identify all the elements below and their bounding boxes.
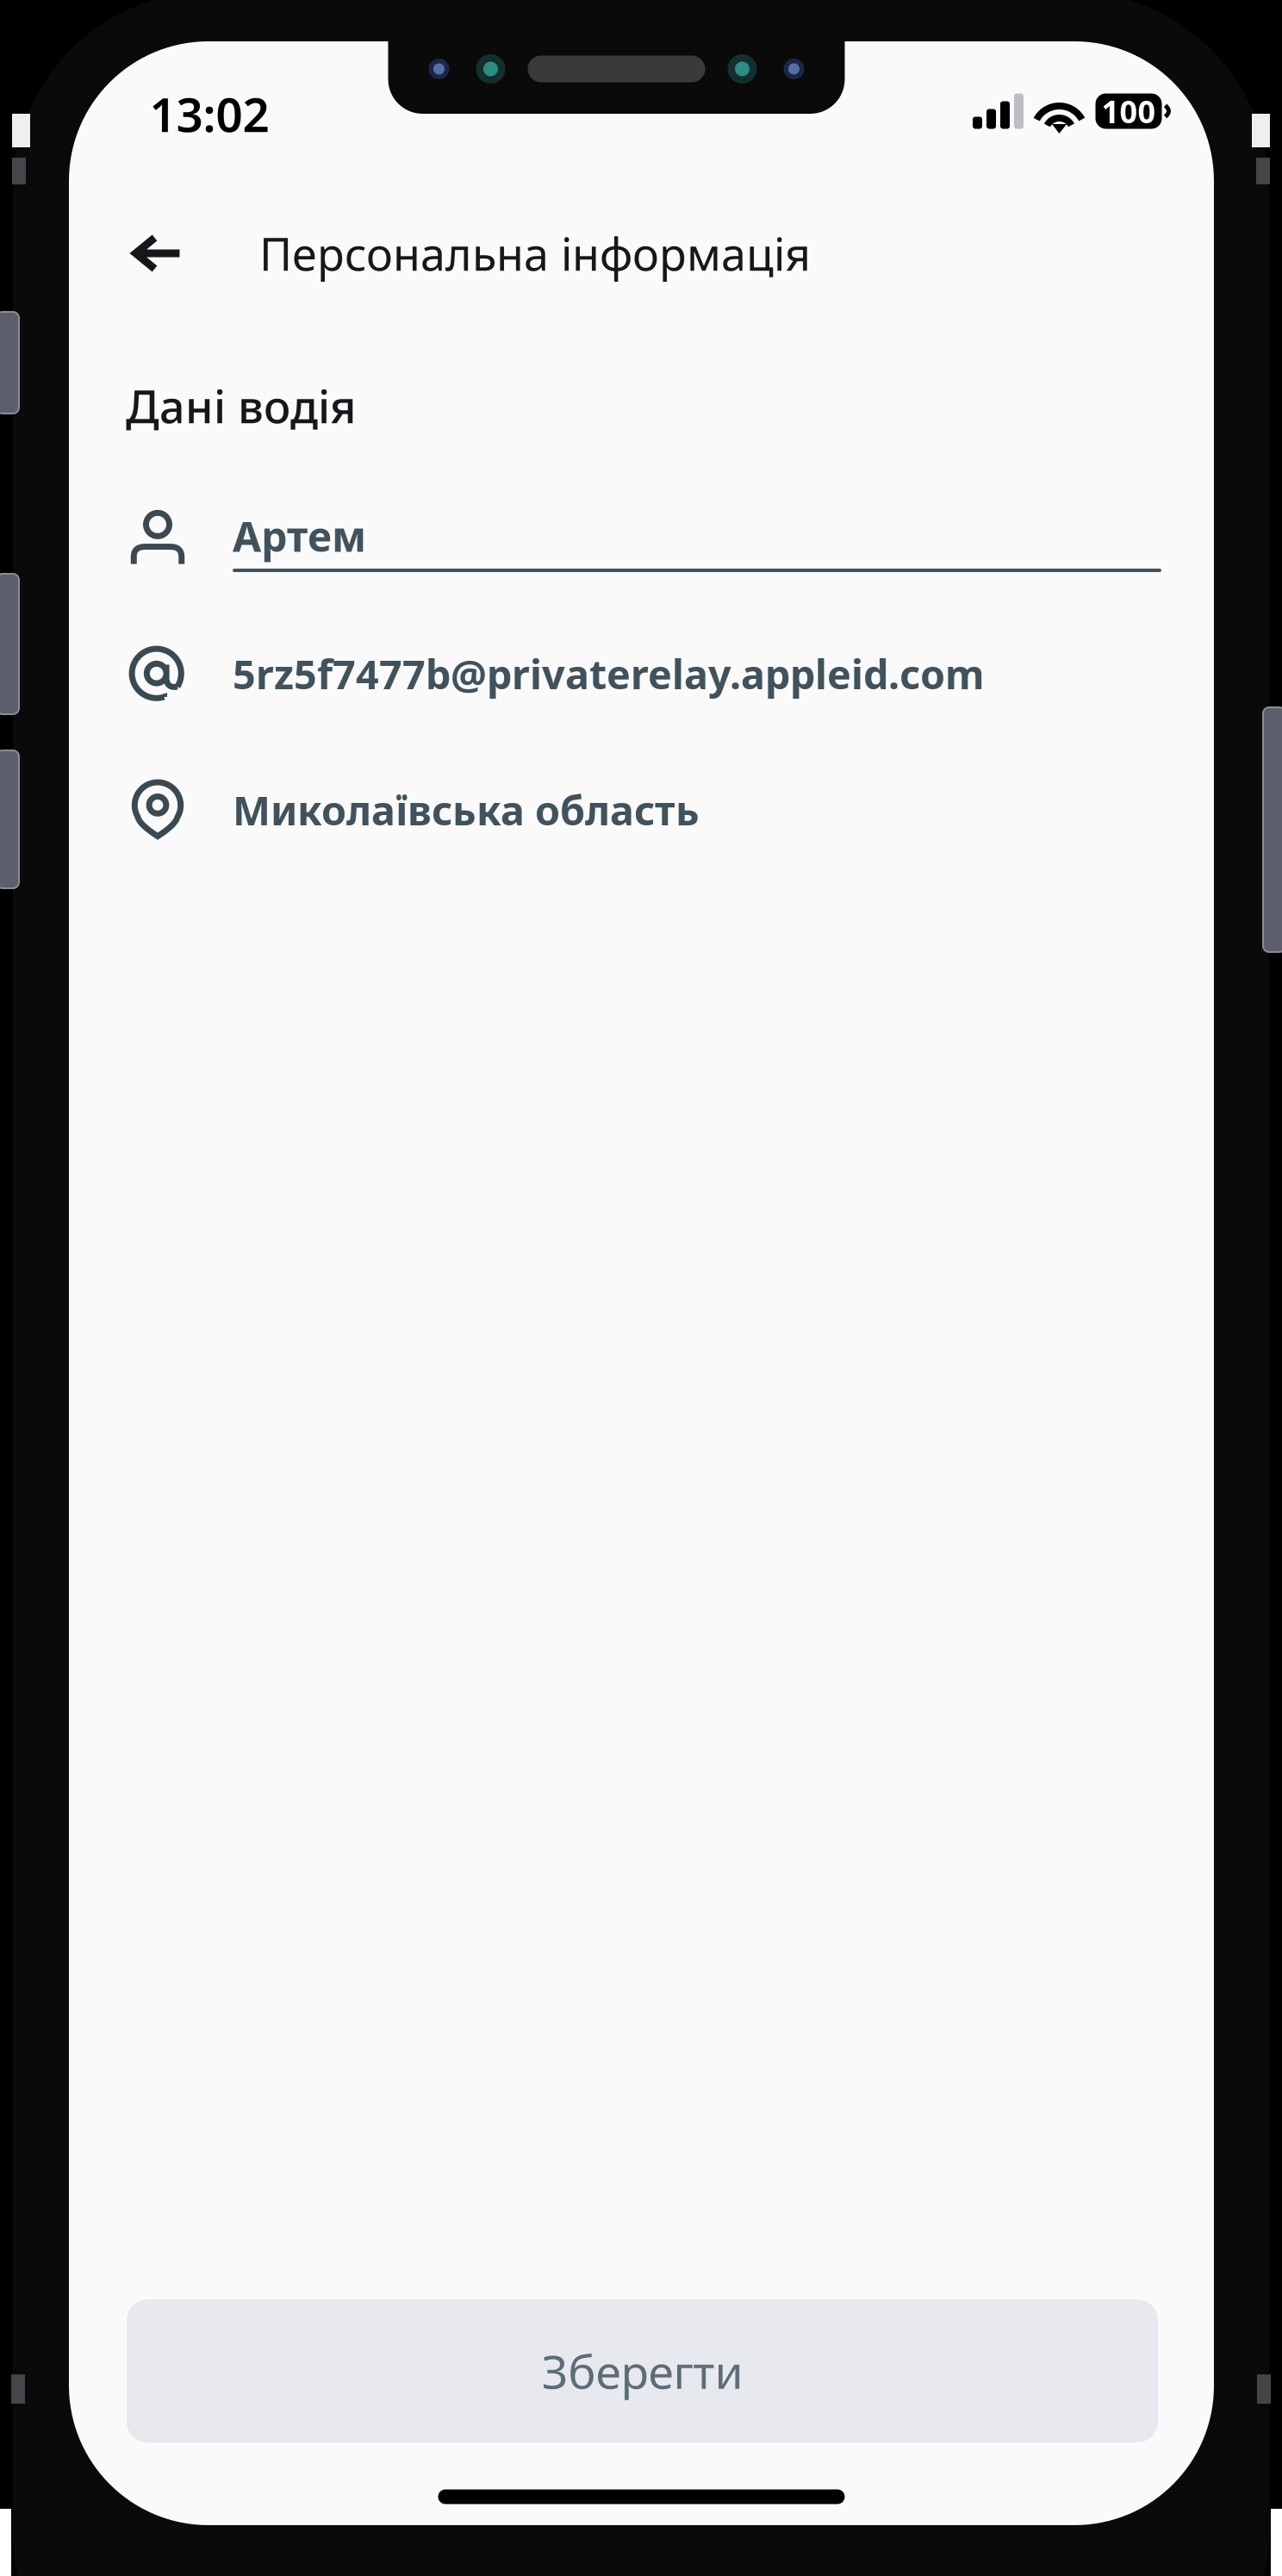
button[interactable]: Артем: [127, 497, 1167, 609]
staticText: 100: [1102, 91, 1156, 132]
staticText: Дані водія: [126, 376, 356, 436]
staticText: Миколаївська область: [233, 783, 700, 837]
button[interactable]: 5rz5f7477b@privaterelay.appleid.com: [127, 632, 1167, 718]
button[interactable]: Миколаївська область: [127, 768, 1167, 854]
staticText: 5rz5f7477b@privaterelay.appleid.com: [233, 647, 985, 700]
staticText: Персональна інформація: [259, 224, 811, 283]
staticText: Зберегти: [541, 2340, 743, 2401]
staticText: Артем: [233, 508, 366, 563]
button[interactable]: Зберегти: [127, 2299, 1158, 2442]
staticText: 13:02: [149, 82, 269, 145]
button[interactable]: Back: [109, 208, 206, 298]
